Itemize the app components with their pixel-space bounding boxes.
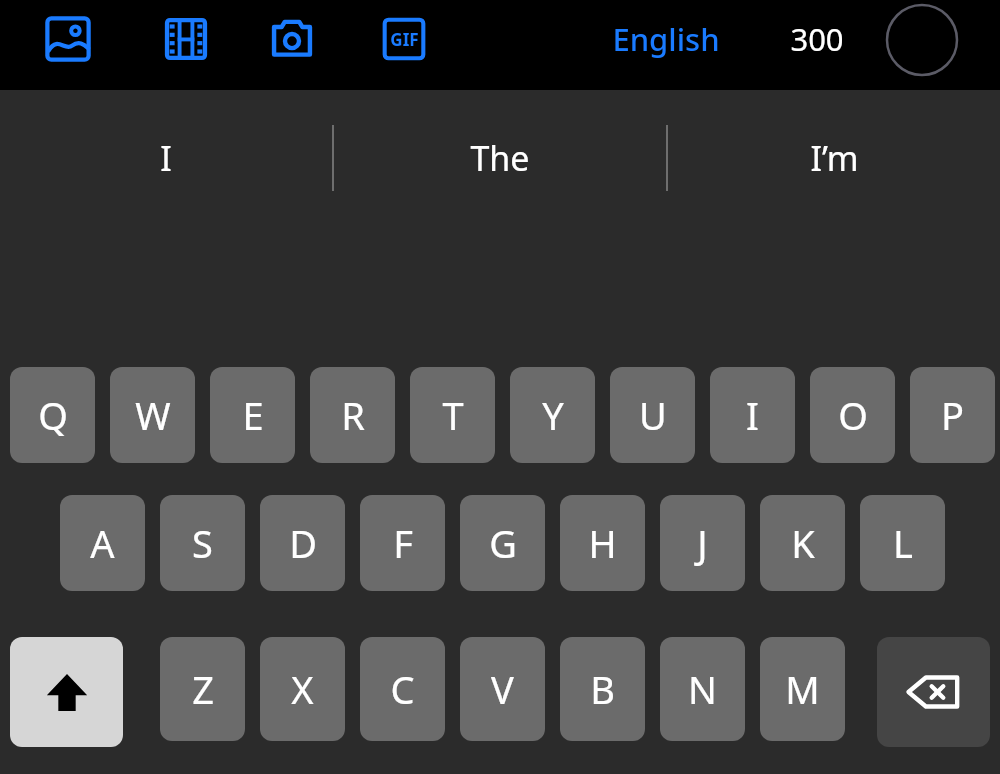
staticText: H [588, 517, 617, 569]
staticText: I’m [810, 135, 859, 181]
staticText: B [590, 663, 615, 715]
button[interactable]: Y [510, 367, 595, 463]
staticText: C [390, 663, 415, 715]
button[interactable]: I [0, 90, 332, 226]
button[interactable]: M [760, 637, 845, 741]
button[interactable]: Z [160, 637, 245, 741]
button[interactable]: R [310, 367, 395, 463]
staticText: T [442, 389, 464, 441]
button[interactable]: 300 [790, 8, 844, 70]
button[interactable]: S [160, 495, 245, 591]
staticText: GIF [390, 28, 419, 51]
staticText: F [393, 517, 413, 569]
button[interactable]: Videos [158, 11, 214, 67]
button[interactable]: G [460, 495, 545, 591]
button[interactable]: I’m [668, 90, 1000, 226]
button[interactable]: The [334, 90, 666, 226]
button[interactable]: X [260, 637, 345, 741]
button[interactable]: Q [10, 367, 95, 463]
staticText: Q [38, 389, 68, 441]
button[interactable]: V [460, 637, 545, 741]
staticText: S [192, 517, 213, 569]
button[interactable]: Backspace [877, 637, 990, 747]
button[interactable]: I [710, 367, 795, 463]
button[interactable]: L [860, 495, 945, 591]
button[interactable]: Shift [10, 637, 123, 747]
staticText: The [470, 135, 530, 181]
button[interactable]: P [910, 367, 995, 463]
staticText: P [941, 389, 964, 441]
staticText: W [135, 389, 171, 441]
button[interactable]: K [760, 495, 845, 591]
staticText: A [90, 517, 115, 569]
button[interactable]: O [810, 367, 895, 463]
button[interactable]: Profile [884, 2, 960, 78]
staticText: X [291, 663, 314, 715]
staticText: V [491, 663, 514, 715]
staticText: English [612, 18, 720, 60]
button[interactable]: B [560, 637, 645, 741]
staticText: O [838, 389, 868, 441]
button[interactable]: N [660, 637, 745, 741]
button[interactable]: H [560, 495, 645, 591]
button[interactable]: E [210, 367, 295, 463]
button[interactable]: C [360, 637, 445, 741]
staticText: U [639, 389, 667, 441]
staticText: J [697, 517, 708, 569]
staticText: R [341, 389, 365, 441]
staticText: 300 [790, 18, 844, 60]
staticText: N [688, 663, 717, 715]
staticText: G [489, 517, 517, 569]
staticText: K [791, 517, 815, 569]
staticText: M [785, 663, 820, 715]
staticText: L [893, 517, 913, 569]
button[interactable]: U [610, 367, 695, 463]
staticText: I [160, 135, 172, 181]
button[interactable]: W [110, 367, 195, 463]
staticText: Z [192, 663, 214, 715]
button[interactable]: T [410, 367, 495, 463]
button[interactable]: English [612, 8, 720, 70]
staticText: Y [542, 389, 564, 441]
button[interactable]: Camera [264, 11, 320, 67]
staticText: D [289, 517, 317, 569]
staticText: I [746, 389, 759, 441]
button[interactable]: Photos [40, 11, 96, 67]
button[interactable]: A [60, 495, 145, 591]
button[interactable]: D [260, 495, 345, 591]
button[interactable]: GIF [376, 11, 432, 67]
button[interactable]: F [360, 495, 445, 591]
staticText: E [242, 389, 264, 441]
button[interactable]: J [660, 495, 745, 591]
